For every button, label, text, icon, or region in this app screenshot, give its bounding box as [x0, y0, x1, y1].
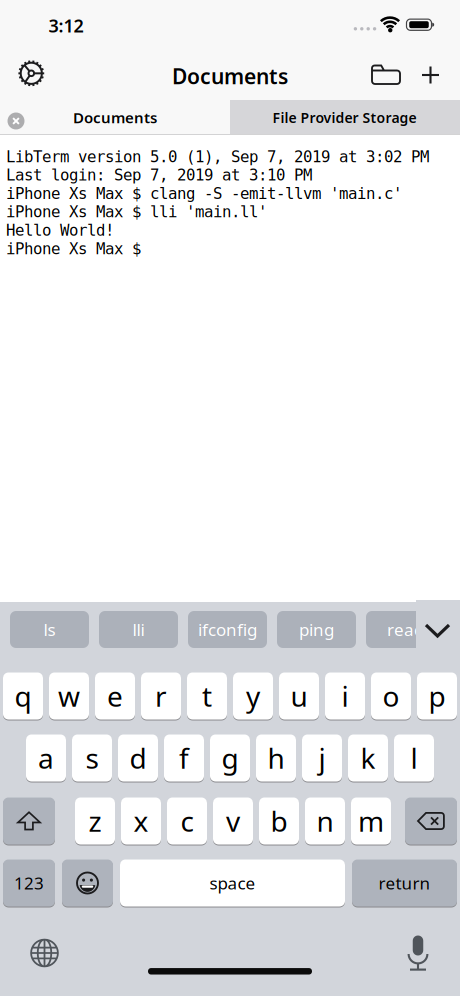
staticText: lli: [132, 618, 144, 641]
staticText: space: [209, 872, 255, 894]
staticText: j: [318, 739, 325, 777]
button[interactable]: f: [164, 734, 204, 782]
staticText: m: [358, 802, 384, 840]
staticText: Hello World!: [6, 221, 114, 239]
staticText: iPhone Xs Max $: [6, 240, 150, 258]
button[interactable]: a: [26, 734, 66, 782]
button[interactable]: [3, 797, 55, 845]
button[interactable]: c: [167, 797, 207, 845]
staticText: s: [85, 739, 98, 777]
staticText: k: [360, 739, 375, 777]
button[interactable]: w: [49, 672, 89, 720]
staticText: iPhone Xs Max $ lli 'main.ll': [6, 203, 267, 221]
button[interactable]: Documents: [0, 100, 230, 134]
staticText: p: [428, 677, 445, 715]
button[interactable]: p: [417, 672, 457, 720]
button[interactable]: h: [256, 734, 296, 782]
button[interactable]: k: [348, 734, 388, 782]
staticText: 3:12: [48, 13, 83, 37]
button[interactable]: [422, 66, 439, 83]
staticText: i: [341, 677, 348, 715]
button[interactable]: q: [3, 672, 43, 720]
staticText: n: [316, 802, 333, 840]
staticText: LibTerm version 5.0 (1), Sep 7, 2019 at …: [6, 148, 429, 166]
staticText: ls: [43, 618, 55, 641]
button[interactable]: u: [279, 672, 319, 720]
staticText: 123: [14, 872, 44, 894]
staticText: Documents: [73, 107, 157, 127]
button[interactable]: lli: [99, 611, 178, 648]
button[interactable]: i: [325, 672, 365, 720]
button[interactable]: [405, 797, 457, 845]
button[interactable]: l: [394, 734, 434, 782]
button[interactable]: return: [352, 859, 457, 907]
staticText: a: [38, 739, 54, 777]
button[interactable]: [7, 112, 24, 129]
staticText: iPhone Xs Max $ clang -S -emit-llvm 'mai…: [6, 184, 402, 203]
button[interactable]: [62, 859, 113, 907]
button[interactable]: ls: [10, 611, 89, 648]
button[interactable]: t: [187, 672, 227, 720]
staticText: h: [267, 739, 284, 777]
staticText: o: [382, 677, 399, 715]
button[interactable]: v: [213, 797, 253, 845]
button[interactable]: [15, 57, 47, 89]
button[interactable]: d: [118, 734, 158, 782]
button[interactable]: [408, 938, 428, 965]
staticText: return: [378, 872, 430, 894]
staticText: w: [58, 677, 80, 715]
button[interactable]: b: [259, 797, 299, 845]
button[interactable]: space: [120, 859, 345, 907]
staticText: c: [180, 802, 193, 840]
button[interactable]: o: [371, 672, 411, 720]
staticText: Documents: [172, 62, 288, 90]
staticText: g: [221, 739, 238, 777]
staticText: b: [270, 802, 287, 840]
button[interactable]: ifconfig: [188, 611, 267, 648]
button[interactable]: n: [305, 797, 345, 845]
staticText: Last login: Sep 7, 2019 at 3:10 PM: [6, 166, 312, 184]
staticText: e: [107, 677, 123, 715]
button[interactable]: x: [121, 797, 161, 845]
staticText: x: [133, 802, 148, 840]
button[interactable]: [371, 63, 401, 87]
button[interactable]: e: [95, 672, 135, 720]
button[interactable]: g: [210, 734, 250, 782]
button[interactable]: m: [351, 797, 391, 845]
staticText: f: [179, 739, 189, 777]
staticText: r: [155, 677, 167, 715]
button[interactable]: [424, 623, 450, 637]
button[interactable]: y: [233, 672, 273, 720]
staticText: File Provider Storage: [272, 108, 416, 127]
staticText: t: [202, 677, 212, 715]
button[interactable]: r: [141, 672, 181, 720]
staticText: q: [14, 677, 31, 715]
staticText: d: [129, 739, 146, 777]
button[interactable]: z: [75, 797, 115, 845]
button[interactable]: ping: [277, 611, 356, 648]
button[interactable]: read: [366, 611, 445, 648]
button[interactable]: File Provider Storage: [230, 100, 460, 134]
button[interactable]: j: [302, 734, 342, 782]
staticText: read: [387, 618, 424, 641]
staticText: ifconfig: [198, 618, 257, 641]
staticText: u: [290, 677, 307, 715]
staticText: v: [226, 802, 240, 840]
button[interactable]: 123: [3, 859, 55, 907]
staticText: ping: [299, 618, 334, 641]
staticText: l: [410, 739, 417, 777]
staticText: z: [88, 802, 101, 840]
button[interactable]: s: [72, 734, 112, 782]
staticText: y: [246, 677, 260, 715]
button[interactable]: [30, 938, 59, 967]
